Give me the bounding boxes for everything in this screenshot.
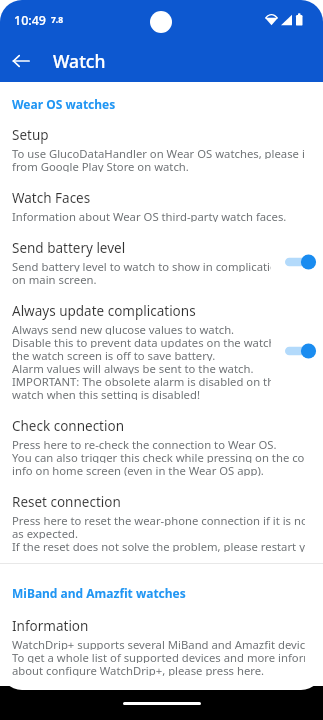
- staticText: watch when this setting is disabled!: [12, 387, 200, 400]
- staticText: Alarm values will always be sent to the …: [12, 361, 254, 374]
- button[interactable]: Information: [0, 617, 323, 676]
- staticText: Press here to re-check the connection to…: [12, 437, 277, 450]
- staticText: Send battery level: [12, 239, 126, 257]
- staticText: from Google Play Store on watch.: [12, 159, 189, 172]
- button[interactable]: Check connection: [0, 417, 323, 476]
- button[interactable]: [277, 336, 323, 366]
- staticText: Always update complications: [12, 302, 196, 320]
- staticText: Setup: [12, 126, 49, 144]
- staticText: MiBand and Amazfit watches: [12, 585, 186, 601]
- button[interactable]: [277, 247, 323, 277]
- staticText: Disable this to prevent data updates on …: [12, 335, 271, 348]
- staticText: Information: [12, 617, 89, 635]
- button[interactable]: Watch Faces: [0, 189, 323, 222]
- staticText: the watch screen is off to save battery.: [12, 348, 216, 361]
- staticText: 7.8: [51, 14, 64, 26]
- staticText: Information about Wear OS third-party wa…: [12, 209, 287, 222]
- staticText: Always send new glucose values to watch.: [12, 322, 235, 335]
- staticText: To get a whole list of supported devices…: [12, 650, 305, 663]
- staticText: If the reset does not solve the problem,…: [12, 539, 305, 552]
- button[interactable]: Always update complications: [0, 302, 323, 400]
- staticText: on main screen.: [12, 272, 97, 285]
- staticText: You can also trigger this check while pr…: [12, 450, 305, 463]
- staticText: WatchDrip+ supports several MiBand and A…: [12, 637, 305, 650]
- button[interactable]: Reset connection: [0, 493, 323, 552]
- button[interactable]: Back: [0, 40, 42, 82]
- staticText: To use GlucoDataHandler on Wear OS watch…: [12, 146, 305, 159]
- staticText: Watch: [53, 49, 106, 73]
- staticText: info on home screen (even in the Wear OS…: [12, 463, 264, 476]
- staticText: about configure WatchDrip+, please press…: [12, 663, 265, 676]
- staticText: Send battery level to watch to show in c…: [12, 259, 271, 272]
- staticText: Wear OS watches: [12, 96, 116, 112]
- staticText: Watch Faces: [12, 189, 91, 207]
- staticText: Check connection: [12, 417, 124, 435]
- button[interactable]: Send battery level: [0, 239, 323, 285]
- staticText: IMPORTANT: The obsolete alarm is disable…: [12, 374, 271, 387]
- staticText: as expected.: [12, 526, 78, 539]
- staticText: 10:49: [14, 12, 47, 29]
- staticText: Press here to reset the wear-phone conne…: [12, 513, 305, 526]
- button[interactable]: Setup: [0, 126, 323, 172]
- staticText: Reset connection: [12, 493, 121, 511]
